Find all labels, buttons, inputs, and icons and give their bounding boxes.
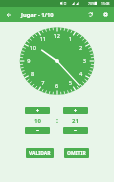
button[interactable]: Back: [5, 11, 13, 19]
staticText: OMITIR: [67, 150, 86, 157]
button[interactable]: Decrease: [25, 127, 50, 134]
button[interactable]: Settings: [100, 9, 111, 20]
button[interactable]: Increase: [25, 107, 50, 114]
button[interactable]: VALIDAR: [26, 148, 54, 158]
staticText: :: [56, 116, 58, 126]
button[interactable]: Increase: [63, 107, 88, 114]
staticText: 21: [72, 117, 79, 125]
staticText: Jugar - 1/10: [21, 11, 54, 19]
staticText: 70%: [88, 1, 96, 6]
staticText: VALIDAR: [29, 150, 51, 157]
staticText: 10: [34, 117, 41, 125]
button[interactable]: OMITIR: [64, 148, 89, 158]
button[interactable]: Reset: [85, 9, 96, 20]
button[interactable]: Decrease: [63, 127, 88, 134]
staticText: 15:08: [101, 1, 110, 5]
